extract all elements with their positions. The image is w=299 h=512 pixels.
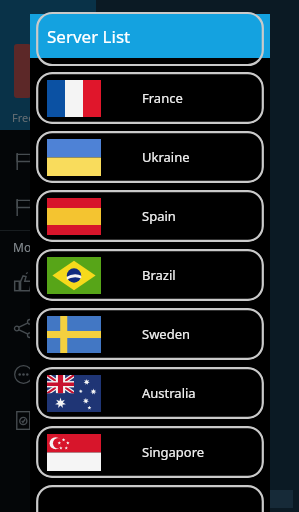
button[interactable]: Ukraine (36, 131, 264, 183)
staticText: France (142, 89, 183, 107)
button[interactable]: Brazil (36, 249, 264, 301)
staticText: Spain (142, 207, 176, 225)
button[interactable]: Previous server (36, 58, 264, 65)
button[interactable]: Spain (36, 190, 264, 242)
button[interactable]: Premium servers (0, 184, 96, 230)
staticText: Free (12, 110, 35, 125)
button[interactable]: Free servers (0, 138, 96, 184)
staticText: Singapore (142, 443, 205, 461)
staticText: Brazil (142, 266, 176, 284)
button[interactable]: Australia (36, 367, 264, 419)
button[interactable]: More apps (0, 351, 96, 397)
staticText: Australia (142, 384, 196, 402)
button[interactable]: Next server (36, 485, 264, 512)
button[interactable]: Share (0, 305, 96, 351)
button[interactable]: Rate us (0, 259, 96, 305)
button[interactable]: Sweden (36, 308, 264, 360)
staticText: Ukraine (142, 148, 190, 166)
button[interactable]: Server List (30, 14, 270, 58)
staticText: Sweden (142, 325, 191, 343)
button[interactable]: Privacy policy (0, 397, 96, 443)
staticText: Mo (13, 239, 32, 255)
button[interactable]: Singapore (36, 426, 264, 478)
staticText: Server List (47, 25, 131, 48)
button[interactable]: France (36, 72, 264, 124)
